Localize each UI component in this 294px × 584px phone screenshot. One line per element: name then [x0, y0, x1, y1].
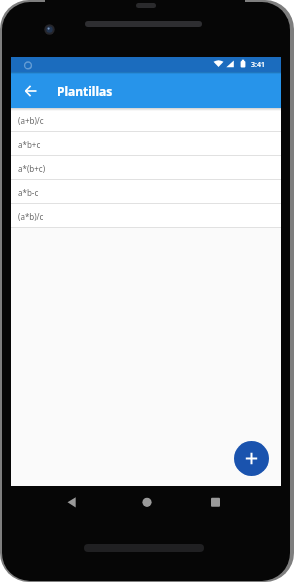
button[interactable]: (a*b)/c — [11, 204, 281, 228]
staticText: 3:41 — [251, 60, 265, 70]
staticText: (a*b)/c — [18, 211, 44, 222]
staticText: (a+b)/c — [18, 115, 44, 126]
button[interactable]: a*b-c — [11, 180, 281, 204]
staticText: a*b-c — [18, 187, 39, 198]
button[interactable] — [234, 441, 269, 476]
button[interactable]: a*(b+c) — [11, 156, 281, 180]
staticText: a*(b+c) — [18, 163, 46, 174]
button[interactable]: (a+b)/c — [11, 108, 281, 132]
button[interactable] — [11, 74, 51, 108]
staticText: a*b+c — [18, 139, 41, 150]
button[interactable]: a*b+c — [11, 132, 281, 156]
staticText: Plantillas — [57, 83, 113, 99]
